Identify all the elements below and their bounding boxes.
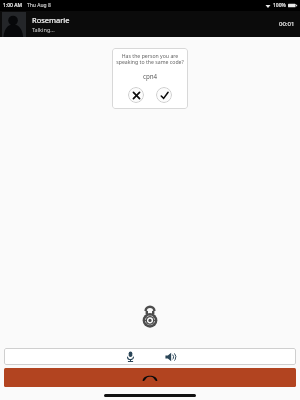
button[interactable]: Rosemarie — [0, 11, 300, 37]
staticText: Rosemarie — [32, 15, 70, 25]
staticText: 00:01 — [279, 20, 295, 28]
staticText: cpn4 — [143, 72, 158, 80]
button[interactable]: Codes do not match — [128, 87, 144, 103]
button[interactable]: Mute microphone — [120, 348, 140, 365]
button[interactable]: End call — [4, 368, 296, 387]
staticText: 1:00 AM — [3, 2, 23, 9]
button[interactable]: Speaker — [160, 348, 180, 365]
staticText: Talking... — [32, 26, 55, 33]
staticText: Thu Aug 8 — [27, 2, 51, 9]
other: Encrypted call — [139, 305, 161, 327]
button[interactable]: Codes match — [156, 87, 172, 103]
staticText: 100% — [273, 2, 286, 9]
staticText: Has the person you are speaking to the s… — [115, 52, 185, 66]
